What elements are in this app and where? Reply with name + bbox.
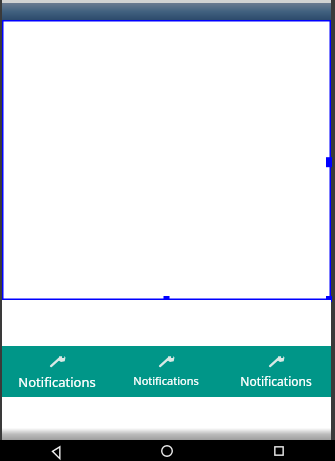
staticText: Notifications [240, 373, 312, 389]
button[interactable]: Back [0, 440, 111, 461]
button[interactable]: Recent apps [223, 440, 335, 461]
button[interactable]: Home [111, 440, 223, 461]
button[interactable]: Notifications [221, 346, 331, 397]
button[interactable]: Notifications [2, 346, 111, 397]
staticText: Notifications [133, 373, 199, 388]
button[interactable]: Notifications [111, 346, 221, 397]
staticText: Notifications [18, 373, 96, 391]
